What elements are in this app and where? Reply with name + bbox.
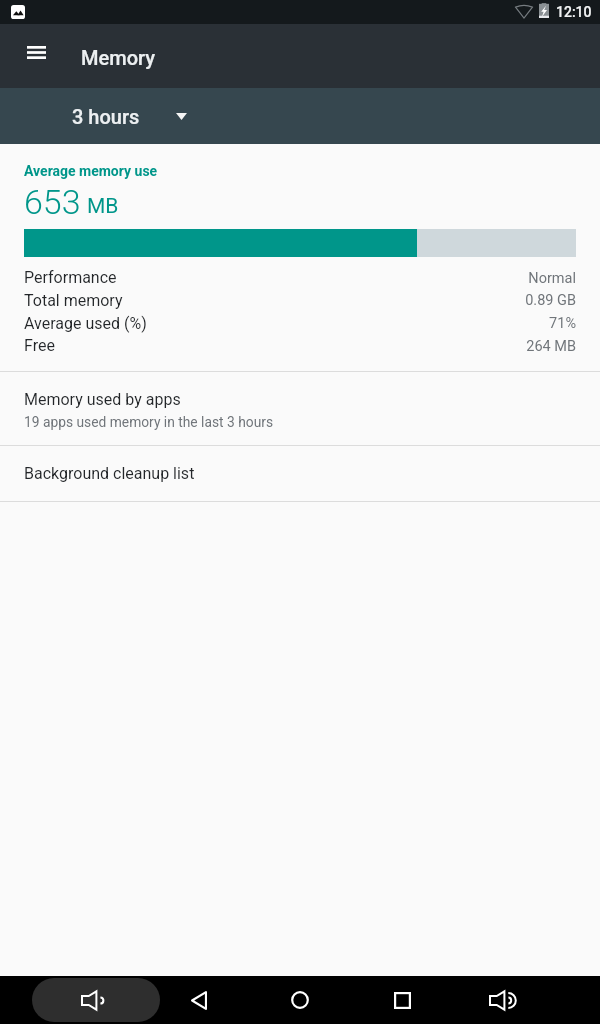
staticText: 3 hours bbox=[72, 105, 140, 128]
button[interactable]: Home bbox=[276, 976, 324, 1024]
staticText: Performance bbox=[24, 268, 117, 287]
staticText: Total memory bbox=[24, 291, 123, 310]
staticText: 0.89 GB bbox=[0, 292, 576, 309]
staticText: Average memory use bbox=[24, 163, 158, 179]
staticText: Average used (%) bbox=[24, 314, 147, 333]
button[interactable]: Volume down bbox=[32, 978, 160, 1022]
staticText: Normal bbox=[0, 270, 576, 287]
button[interactable]: Open navigation drawer bbox=[12, 28, 60, 76]
staticText: Memory used by apps bbox=[24, 390, 181, 409]
button[interactable]: Volume up bbox=[478, 976, 526, 1024]
button[interactable]: Recent apps bbox=[378, 976, 426, 1024]
staticText: MB bbox=[87, 194, 119, 219]
staticText: 19 apps used memory in the last 3 hours bbox=[24, 414, 274, 430]
staticText: 264 MB bbox=[0, 338, 576, 355]
staticText: Memory bbox=[81, 46, 156, 69]
staticText: 71% bbox=[0, 315, 576, 332]
button[interactable]: Back bbox=[175, 976, 223, 1024]
button[interactable]: Memory used by apps bbox=[0, 372, 600, 445]
button[interactable]: 3 hours bbox=[0, 88, 600, 144]
staticText: Background cleanup list bbox=[24, 464, 195, 483]
staticText: Free bbox=[24, 336, 55, 355]
staticText: 12:10 bbox=[556, 4, 592, 20]
button[interactable]: Background cleanup list bbox=[0, 446, 600, 501]
staticText: 653 bbox=[24, 182, 81, 222]
